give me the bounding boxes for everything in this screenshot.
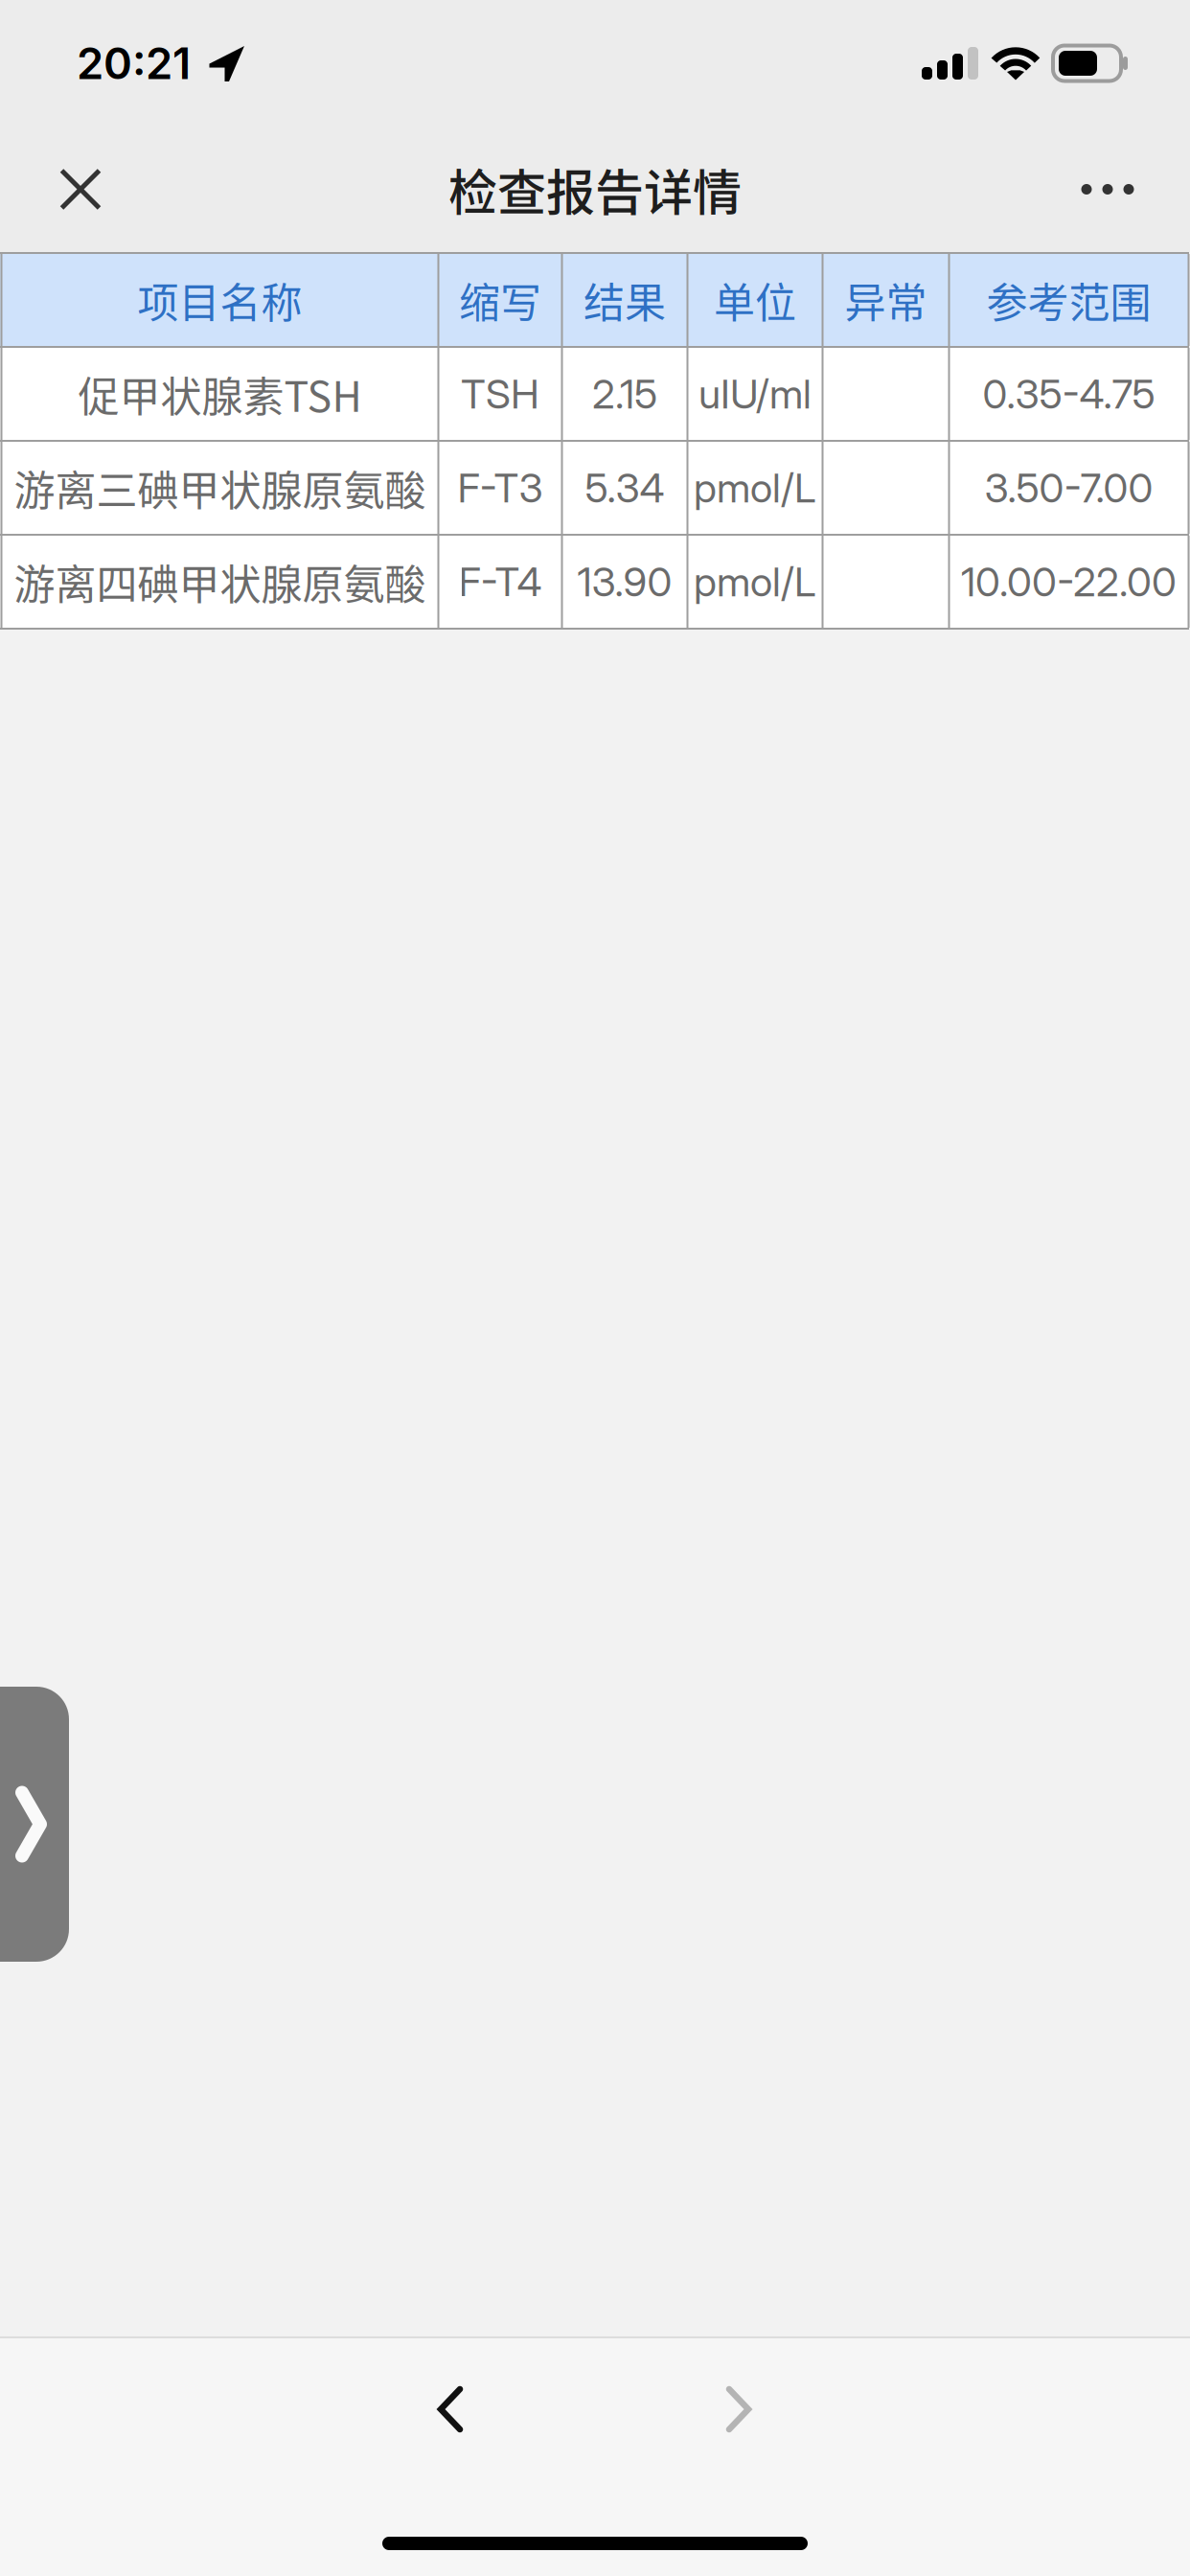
staticText: 缩写 [459,270,541,330]
staticText: F-T4 [458,557,542,606]
staticText: TSH [461,370,539,418]
staticText: 2.15 [592,370,657,418]
staticText: 游离四碘甲状腺原氨酸 [14,552,426,612]
staticText: pmol/L [694,557,816,606]
button[interactable]: More options [1025,126,1190,252]
staticText: 参考范围 [986,270,1151,330]
staticText: 检查报告详情 [448,154,742,225]
staticText: 项目名称 [137,270,302,330]
staticText: uIU/ml [698,370,812,418]
staticText: 5.34 [585,463,664,512]
button[interactable]: Forward [643,2338,835,2480]
staticText: 13.90 [577,557,672,606]
staticText: 0.35-4.75 [983,370,1155,418]
staticText: 结果 [584,270,666,330]
staticText: 20:21 [77,37,191,90]
staticText: 促甲状腺素TSH [78,364,362,424]
button[interactable]: Close [0,126,161,252]
staticText: pmol/L [694,463,816,512]
staticText: 3.50-7.00 [984,463,1153,512]
button[interactable]: Back [355,2338,546,2480]
staticText: 单位 [714,270,796,330]
staticText: F-T3 [458,463,543,512]
button[interactable]: Open menu [0,1687,69,1962]
staticText: 异常 [845,270,927,330]
staticText: 10.00-22.00 [961,557,1177,606]
staticText: 游离三碘甲状腺原氨酸 [14,458,426,518]
